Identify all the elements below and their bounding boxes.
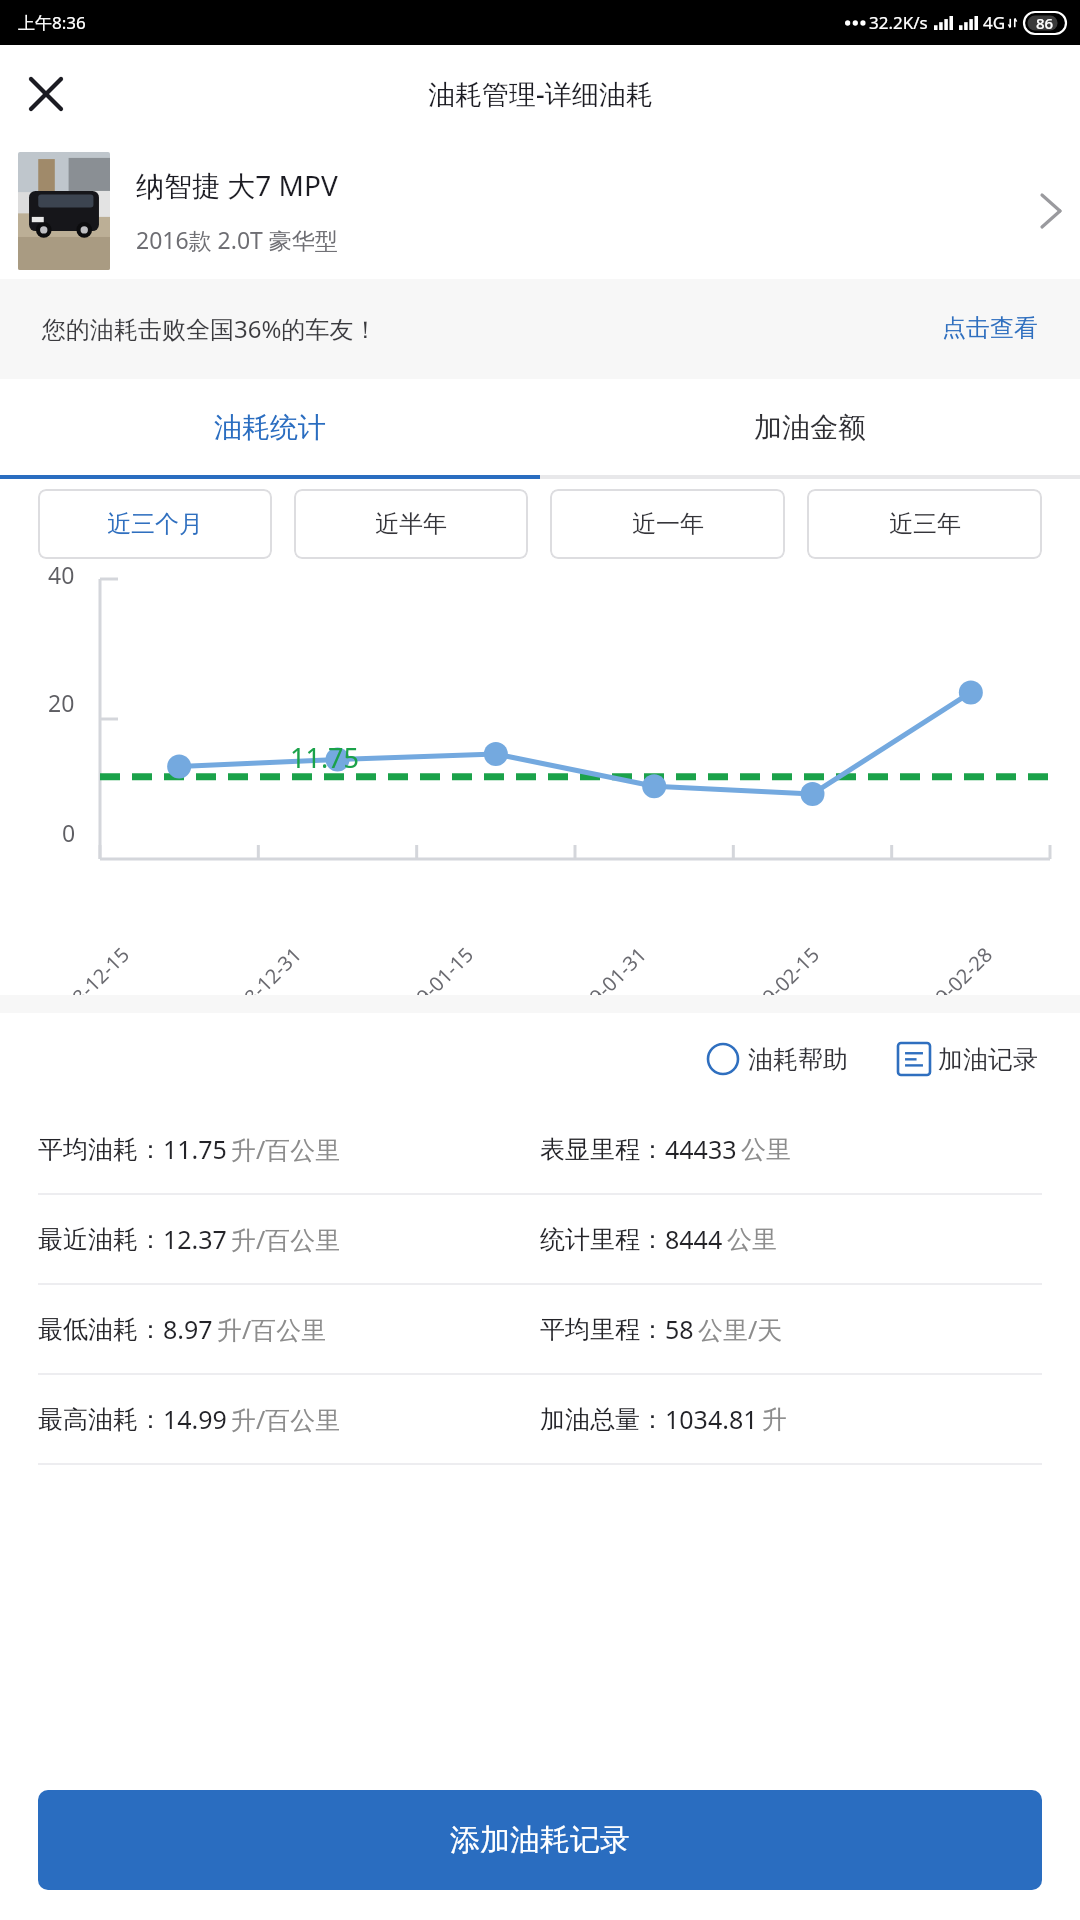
staticText: 加油记录 [938,1044,1038,1075]
staticText: 您的油耗击败全国36%的车友！ [42,312,378,345]
staticText: 8.97 [163,1312,213,1346]
staticText: 油耗统计 [214,410,326,445]
staticText: 2019-02-28 [905,941,998,1034]
staticText: 最高油耗： [38,1404,163,1435]
staticText: 近三年 [889,509,961,539]
staticText: 公里 [727,1224,777,1255]
button[interactable]: 油耗统计 [0,379,540,475]
button[interactable]: 添加油耗记录 [38,1790,1042,1890]
staticText: 表显里程： [540,1134,665,1165]
button[interactable]: 近一年 [550,489,785,559]
staticText: 统计里程： [540,1224,665,1255]
staticText: 2019-02-15 [732,941,825,1034]
staticText: 升/百公里 [231,1402,341,1436]
staticText: 0 [62,817,76,848]
staticText: 20 [48,687,75,718]
staticText: 58 [665,1312,694,1346]
button[interactable]: 近半年 [294,489,528,559]
staticText: 添加油耗记录 [450,1821,630,1859]
staticText: 最近油耗： [38,1224,163,1255]
staticText: 32.2K/s [869,11,928,34]
staticText: 近一年 [632,509,704,539]
staticText: 近半年 [375,509,447,539]
button[interactable]: 纳智捷 大7 MPV [0,142,1080,279]
staticText: 86 [1036,13,1054,33]
staticText: 14.99 [163,1402,227,1436]
staticText: 升/百公里 [231,1132,341,1166]
staticText: 8444 [665,1222,723,1256]
staticText: 44433 [665,1132,737,1166]
button[interactable]: 近三个月 [38,489,272,559]
staticText: 1034.81 [665,1402,758,1436]
button[interactable]: 您的油耗击败全国36%的车友！ [0,287,1080,369]
staticText: 2016款 2.0T 豪华型 [136,224,338,255]
staticText: 2018-12-31 [214,941,307,1034]
staticText: 升/百公里 [217,1312,327,1346]
staticText: 上午8:36 [18,11,86,34]
staticText: 升 [762,1404,787,1435]
staticText: 油耗管理-详细油耗 [428,75,653,112]
button[interactable]: 加油记录 [890,1035,1046,1083]
staticText: 4G [983,11,1006,34]
staticText: 近三个月 [107,509,203,539]
button[interactable]: 油耗帮助 [698,1034,856,1084]
staticText: 最低油耗： [38,1314,163,1345]
staticText: 油耗帮助 [748,1044,848,1075]
staticText: 12.37 [163,1222,227,1256]
button[interactable]: 加油金额 [540,379,1080,475]
staticText: 加油金额 [754,410,866,445]
staticText: 平均里程： [540,1314,665,1345]
staticText: 2019-01-15 [386,941,479,1034]
staticText: 11.75 [163,1132,227,1166]
staticText: 11.75 [290,739,360,776]
button[interactable]: 近三年 [807,489,1042,559]
staticText: 公里 [741,1134,791,1165]
staticText: 平均油耗： [38,1134,163,1165]
staticText: 2019-01-31 [559,941,652,1034]
staticText: 点击查看 [942,313,1038,343]
button[interactable]: Close [14,62,78,126]
staticText: 40 [48,559,75,590]
staticText: 公里/天 [698,1312,783,1346]
staticText: 加油总量： [540,1404,665,1435]
staticText: 升/百公里 [231,1222,341,1256]
staticText: 纳智捷 大7 MPV [136,166,338,204]
staticText: 2018-12-15 [42,941,135,1034]
